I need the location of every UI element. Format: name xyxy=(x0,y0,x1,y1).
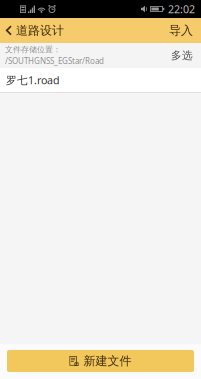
button[interactable]: 新建文件 xyxy=(7,350,194,372)
staticText: 文件存储位置： xyxy=(5,45,61,55)
button[interactable]: 道路设计 xyxy=(0,18,72,43)
staticText: /SOUTHGNSS_EGStar/Road xyxy=(5,56,104,66)
staticText: 22:02 xyxy=(168,2,195,16)
staticText: 多选 xyxy=(171,49,193,62)
button[interactable]: 罗七1.road xyxy=(0,68,201,93)
staticText: 道路设计 xyxy=(16,23,64,38)
button[interactable]: 多选 xyxy=(163,43,201,68)
staticText: 新建文件 xyxy=(83,354,131,368)
button[interactable]: 导入 xyxy=(161,18,201,43)
staticText: 导入 xyxy=(169,23,193,38)
staticText: 罗七1.road xyxy=(6,73,60,87)
